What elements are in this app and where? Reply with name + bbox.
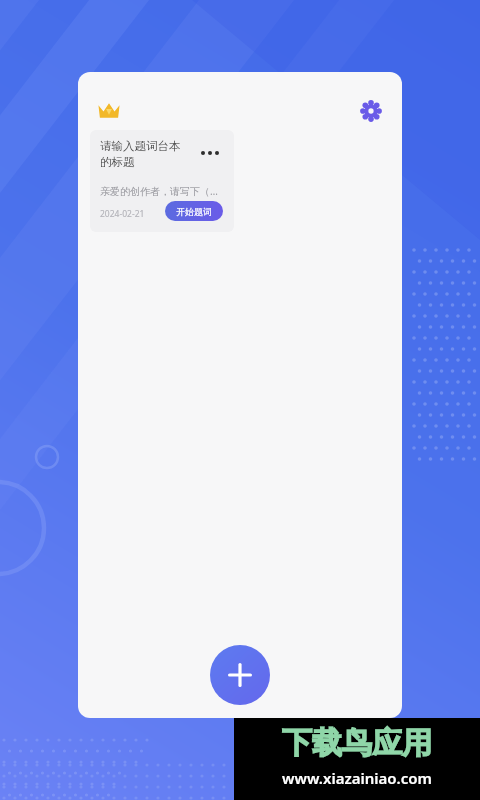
staticText: 亲爱的创作者，请写下（… [100,184,218,198]
staticText: 2024-02-21 [100,208,145,220]
staticText: 请输入题词台本 的标题 [100,139,181,169]
button[interactable]: More options [195,142,225,164]
button[interactable]: VIP [92,94,126,128]
staticText: 下载鸟应用 [282,724,432,762]
button[interactable]: Settings [354,94,388,128]
staticText: www.xiazainiao.com [282,768,432,788]
button[interactable]: 请输入题词台本 的标题 [90,130,234,232]
button[interactable]: 开始题词 [165,201,223,221]
button[interactable]: Add new script [210,645,270,705]
staticText: 开始题词 [176,206,212,217]
